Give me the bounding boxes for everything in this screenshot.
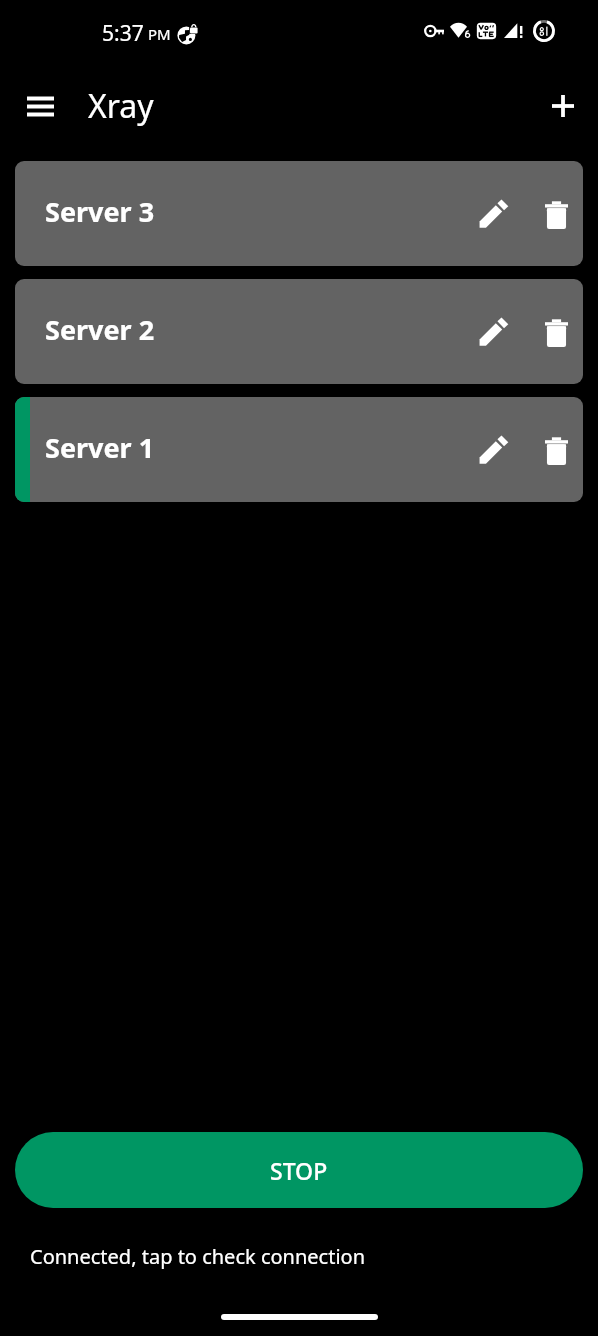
button[interactable]: Connected, tap to check connection [0, 1233, 598, 1279]
staticText: Connected, tap to check connection [30, 1243, 366, 1270]
button[interactable]: STOP [15, 1132, 583, 1208]
button[interactable]: Server 2 [15, 279, 583, 384]
staticText: STOP [270, 1155, 328, 1186]
button[interactable]: Edit [470, 191, 516, 237]
button[interactable]: Server 1 [15, 397, 583, 502]
button[interactable]: Menu [12, 78, 68, 134]
staticText: PM [148, 24, 171, 44]
button[interactable]: Delete [533, 191, 579, 237]
button[interactable]: Delete [533, 309, 579, 355]
button[interactable]: Server 3 [15, 161, 583, 266]
staticText: Server 3 [45, 193, 155, 230]
button[interactable]: Edit [470, 309, 516, 355]
staticText: Xray [88, 84, 154, 128]
button[interactable]: Add server [535, 78, 591, 134]
button[interactable]: Delete [533, 427, 579, 473]
staticText: Server 2 [45, 311, 155, 348]
staticText: Server 1 [45, 429, 155, 466]
staticText: 5:37 [102, 19, 144, 48]
button[interactable]: Edit [470, 427, 516, 473]
